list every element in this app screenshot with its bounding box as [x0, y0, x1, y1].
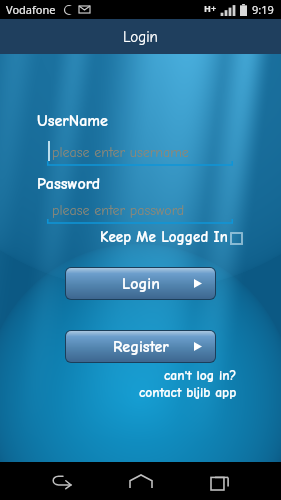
staticText: please enter password — [52, 202, 185, 218]
staticText: H+ — [204, 2, 217, 14]
staticText: Password — [37, 175, 101, 193]
staticText: Keep Me Logged In — [100, 228, 228, 245]
button[interactable]: Keep Me Logged In — [100, 225, 243, 247]
button[interactable]: please enter password — [47, 198, 233, 224]
staticText: UserName — [37, 112, 108, 130]
button[interactable]: Back — [42, 462, 80, 500]
button[interactable]: contact bijib app — [139, 385, 237, 401]
button[interactable]: can't log in? — [164, 368, 237, 384]
button[interactable]: Login — [66, 268, 215, 299]
staticText: Vodafone — [6, 2, 56, 17]
staticText: 9:19 — [252, 2, 274, 17]
button[interactable]: Home — [122, 462, 160, 500]
button[interactable]: Register — [66, 331, 215, 362]
button[interactable]: please enter username — [47, 140, 233, 166]
staticText: Login — [123, 28, 158, 45]
button[interactable]: Recents — [201, 462, 239, 500]
staticText: Login — [122, 275, 160, 293]
staticText: please enter username — [52, 144, 189, 160]
staticText: Register — [113, 338, 169, 356]
